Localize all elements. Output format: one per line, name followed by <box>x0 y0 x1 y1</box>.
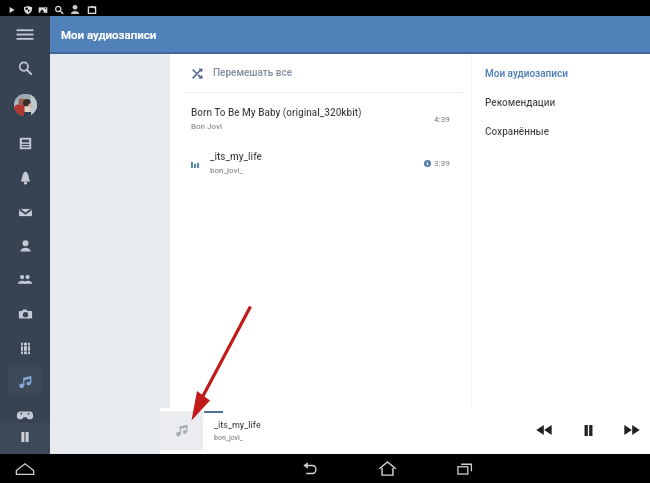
button[interactable]: Notifications <box>0 161 50 193</box>
staticText: bon_jovi_ <box>210 166 244 175</box>
button[interactable]: Search <box>0 52 50 84</box>
staticText: Bon Jovi <box>191 122 222 131</box>
button[interactable]: Friends <box>0 264 50 296</box>
staticText: bon_jovi_ <box>214 434 244 442</box>
button[interactable]: Profile <box>0 94 50 116</box>
button[interactable]: Photos <box>0 298 50 330</box>
staticText: Сохранённые <box>485 126 550 138</box>
button[interactable]: Messages <box>0 196 50 228</box>
button[interactable]: Born To Be My Baby (original_320kbit) <box>170 101 471 137</box>
button[interactable]: Videos <box>0 332 50 364</box>
button[interactable]: Back <box>297 454 325 483</box>
button[interactable]: Рекомендации <box>472 88 650 117</box>
staticText: 3:39 <box>434 159 450 168</box>
button[interactable]: Games <box>0 399 50 431</box>
button[interactable]: Home <box>373 454 401 483</box>
button[interactable]: My profile <box>0 230 50 262</box>
staticText: _its_my_life <box>214 420 261 431</box>
staticText: Born To Be My Baby (original_320kbit) <box>191 107 362 119</box>
button[interactable]: Сохранённые <box>472 117 650 146</box>
staticText: _its_my_life <box>210 151 262 163</box>
button[interactable]: Мои аудиозаписи <box>472 59 650 88</box>
button[interactable]: Pause <box>574 416 602 444</box>
staticText: Рекомендации <box>485 97 556 109</box>
staticText: Мои аудиозаписи <box>485 68 568 80</box>
staticText: Перемешать все <box>213 67 293 79</box>
button[interactable]: Previous <box>530 416 558 444</box>
staticText: 4:39 <box>434 115 450 124</box>
button[interactable]: Menu <box>0 18 50 50</box>
button[interactable]: Recent apps <box>450 454 478 483</box>
staticText: Мои аудиозаписи <box>61 28 157 41</box>
button[interactable]: Show menu <box>11 454 39 483</box>
button[interactable]: Music <box>0 366 50 398</box>
button[interactable]: News <box>0 127 50 159</box>
button[interactable]: _its_my_life <box>170 145 471 181</box>
button[interactable]: Next <box>618 416 646 444</box>
button[interactable]: Перемешать все <box>170 54 471 92</box>
button[interactable]: Pause <box>0 421 50 453</box>
